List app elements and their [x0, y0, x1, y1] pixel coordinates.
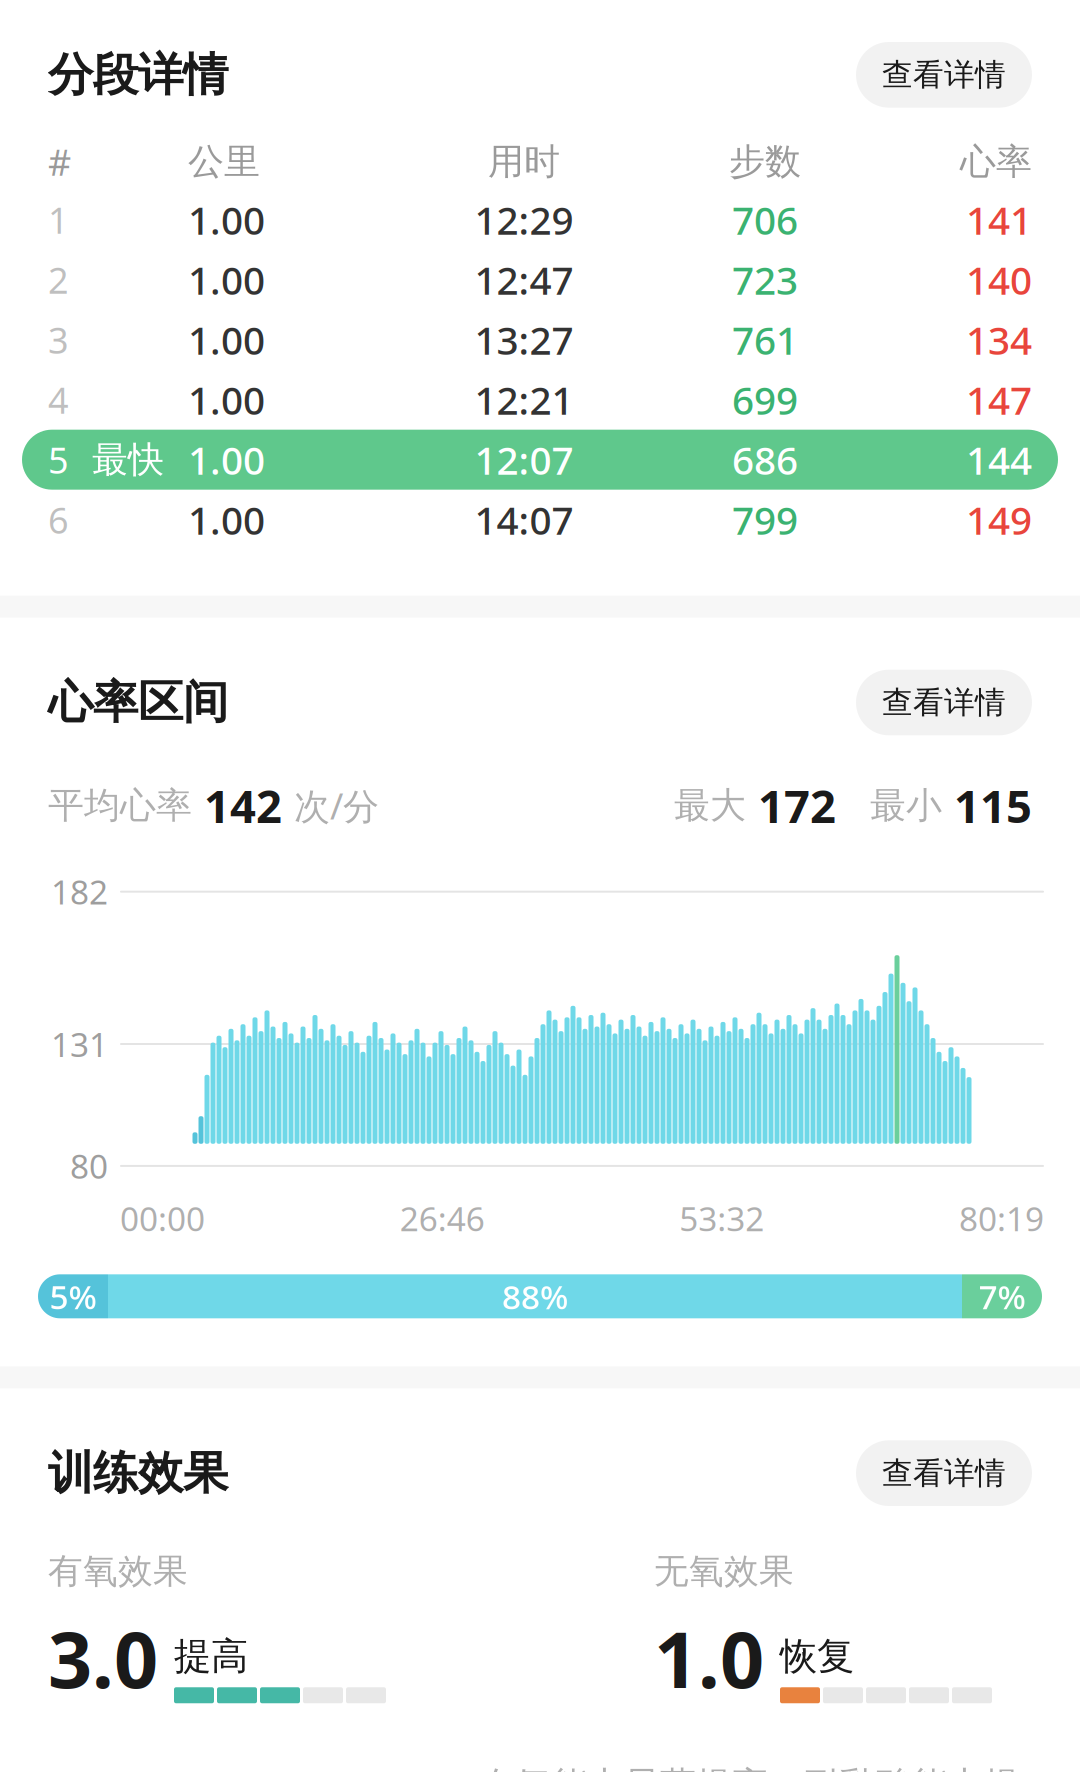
staticText: 706	[732, 194, 798, 245]
staticText: 查看详情	[882, 1454, 1006, 1492]
button[interactable]: 查看详情	[856, 42, 1032, 108]
staticText: 144	[966, 434, 1032, 485]
staticText: 147	[966, 374, 1032, 425]
staticText: 14:07	[474, 494, 573, 545]
staticText: 142	[192, 775, 294, 835]
staticText: 134	[966, 314, 1032, 365]
staticText: 12:47	[474, 254, 573, 305]
staticText: 182	[51, 869, 108, 914]
staticText: 分段详情	[48, 47, 228, 103]
staticText: 训练效果	[48, 1445, 228, 1501]
staticText: 140	[966, 254, 1032, 305]
staticText: 1.00	[188, 254, 265, 305]
staticText: 公里	[188, 140, 260, 184]
staticText: 88%	[502, 1274, 568, 1318]
staticText: 心率区间	[48, 675, 228, 730]
staticText: 172	[746, 775, 836, 835]
staticText: 查看详情	[882, 684, 1006, 721]
staticText: 149	[966, 494, 1032, 545]
staticText: 平均心率	[48, 783, 192, 827]
staticText: 1.00	[188, 434, 265, 485]
staticText: 12:07	[474, 434, 573, 485]
staticText: 4	[48, 376, 69, 424]
staticText: 5	[48, 436, 69, 484]
staticText: 6	[48, 496, 69, 544]
staticText: 无氧效果	[654, 1550, 794, 1593]
staticText: 723	[732, 254, 798, 305]
staticText: 80:19	[959, 1196, 1044, 1240]
staticText: 80	[70, 1144, 108, 1188]
staticText: 最快	[92, 438, 164, 482]
staticText: 次/分	[294, 781, 379, 829]
staticText: 12:29	[474, 194, 573, 245]
staticText: 699	[732, 374, 798, 425]
staticText: 步数	[729, 140, 801, 184]
staticText: 1.00	[188, 374, 265, 425]
staticText: 用时	[488, 140, 560, 184]
staticText: 799	[732, 494, 798, 545]
staticText: 1.00	[188, 194, 265, 245]
staticText: 5%	[49, 1274, 96, 1318]
staticText: 12:21	[474, 374, 573, 425]
button[interactable]: 查看详情	[856, 670, 1032, 735]
staticText: 1.00	[188, 314, 265, 365]
staticText: 最小	[870, 783, 942, 827]
staticText: 00:00	[120, 1196, 205, 1240]
staticText: 13:27	[474, 314, 573, 365]
staticText: 53:32	[679, 1196, 764, 1240]
staticText: 686	[732, 434, 798, 485]
staticText: 761	[732, 314, 798, 365]
staticText: ，有氧能力显著提高，耐乳酸能力提高	[444, 1763, 1020, 1772]
button[interactable]: 查看详情	[856, 1440, 1032, 1506]
staticText: 提高	[174, 1633, 248, 1679]
staticText: 最大	[674, 783, 746, 827]
staticText: 3.0	[48, 1607, 158, 1709]
staticText: 恢复	[780, 1633, 854, 1679]
staticText: 3	[48, 316, 69, 364]
staticText: 7%	[978, 1274, 1025, 1318]
staticText: 141	[966, 194, 1032, 245]
staticText: 1	[48, 196, 69, 244]
staticText: 26:46	[400, 1196, 485, 1240]
staticText: 查看详情	[882, 56, 1006, 94]
staticText: 1.0	[654, 1607, 764, 1709]
staticText: 2	[48, 256, 69, 304]
staticText: 有氧效果	[48, 1550, 188, 1593]
staticText: 131	[51, 1022, 108, 1066]
staticText: 1.00	[188, 494, 265, 545]
staticText: #	[48, 138, 71, 186]
staticText: 115	[942, 775, 1032, 835]
staticText: 心率	[960, 140, 1032, 184]
